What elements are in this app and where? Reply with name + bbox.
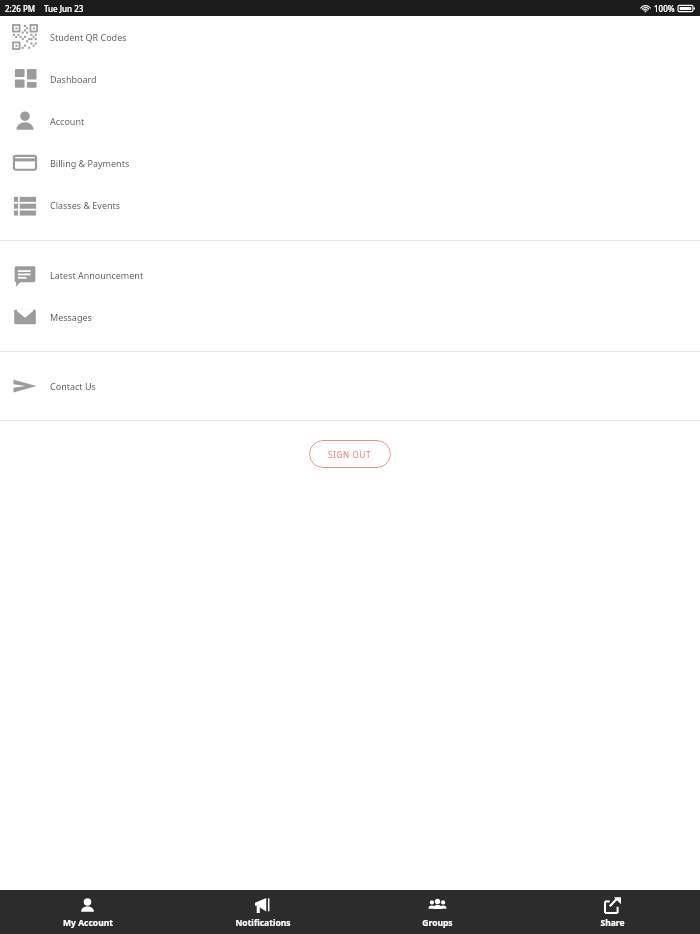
staticText: 2:26 PM	[5, 3, 36, 14]
button[interactable]: Share	[525, 890, 700, 934]
staticText: Student QR Codes	[50, 31, 127, 43]
button[interactable]: Notifications	[175, 890, 350, 934]
staticText: Billing & Payments	[50, 157, 130, 169]
button[interactable]: Classes & Events	[0, 184, 700, 226]
staticText: Notifications	[235, 917, 291, 929]
staticText: 100%	[654, 3, 675, 14]
staticText: Groups	[422, 917, 453, 929]
button[interactable]: Account	[0, 100, 700, 142]
button[interactable]: Billing & Payments	[0, 142, 700, 184]
staticText: Classes & Events	[50, 199, 121, 211]
staticText: Tue Jun 23	[44, 3, 84, 14]
button[interactable]: Latest Announcement	[0, 254, 700, 296]
button[interactable]: Groups	[350, 890, 525, 934]
button[interactable]: SIGN OUT	[309, 440, 391, 468]
button[interactable]: Dashboard	[0, 58, 700, 100]
staticText: Dashboard	[50, 73, 97, 85]
staticText: Contact Us	[50, 380, 96, 392]
button[interactable]: Messages	[0, 296, 700, 338]
staticText: SIGN OUT	[328, 449, 372, 460]
button[interactable]: Student QR Codes	[0, 16, 700, 58]
button[interactable]: Contact Us	[0, 365, 700, 407]
staticText: My Account	[63, 917, 113, 929]
staticText: Account	[50, 115, 85, 127]
button[interactable]: My Account	[0, 890, 175, 934]
staticText: Share	[600, 917, 625, 929]
staticText: Latest Announcement	[50, 269, 144, 281]
staticText: Messages	[50, 311, 92, 323]
